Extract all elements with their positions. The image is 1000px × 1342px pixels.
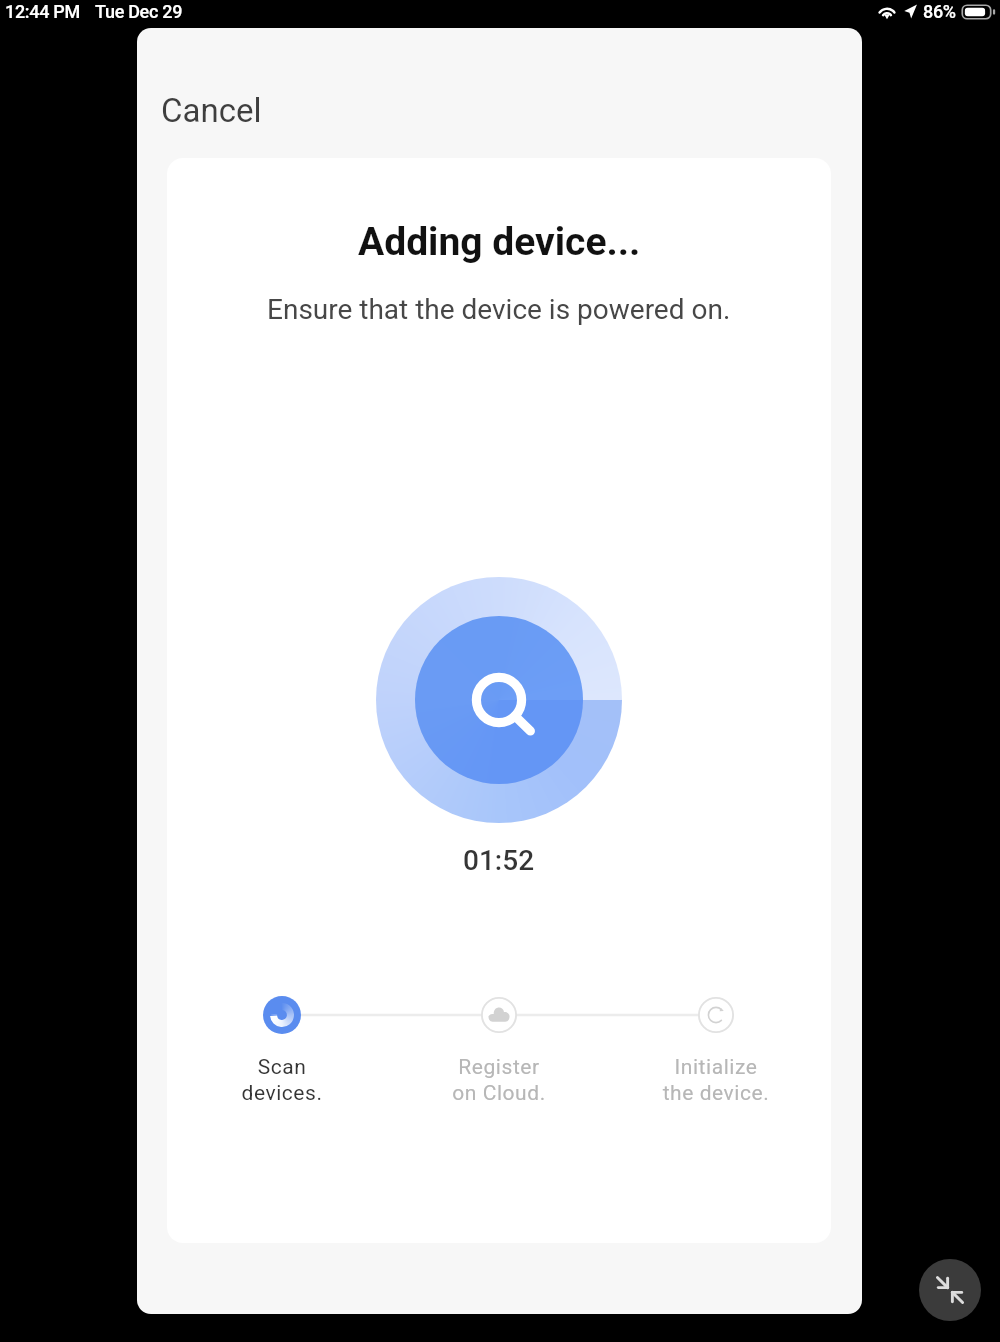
button[interactable]: Initialize the device.: [626, 996, 806, 1105]
button[interactable]: Minimize: [919, 1259, 981, 1321]
staticText: Initialize the device.: [626, 1055, 806, 1105]
button[interactable]: Scan devices.: [192, 996, 372, 1105]
button[interactable]: Cancel: [143, 73, 280, 148]
staticText: 12:44 PM: [5, 1, 80, 22]
staticText: Tue Dec 29: [95, 1, 183, 22]
staticText: Ensure that the device is powered on.: [267, 293, 731, 326]
staticText: Scan devices.: [192, 1055, 372, 1105]
staticText: 86%: [923, 1, 956, 22]
staticText: 01:52: [463, 844, 535, 877]
button[interactable]: Register on Cloud.: [409, 996, 589, 1105]
staticText: Cancel: [161, 91, 262, 130]
staticText: Register on Cloud.: [409, 1055, 589, 1105]
staticText: Adding device...: [358, 219, 641, 265]
